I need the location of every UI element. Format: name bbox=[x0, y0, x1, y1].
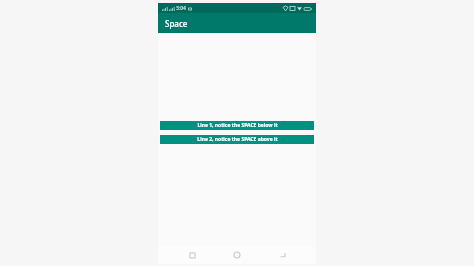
staticText: Line 2, notice the SPACE above it bbox=[197, 136, 278, 143]
button[interactable]: Line 1, notice the SPACE below it bbox=[160, 121, 314, 130]
staticText: Line 1, notice the SPACE below it bbox=[197, 122, 278, 129]
button[interactable]: Line 2, notice the SPACE above it bbox=[160, 135, 314, 144]
staticText: 3:04 bbox=[176, 5, 186, 12]
button[interactable]: Home bbox=[226, 246, 248, 264]
button[interactable]: Recents bbox=[181, 246, 203, 264]
button[interactable]: Back bbox=[271, 246, 293, 264]
staticText: Space bbox=[165, 18, 188, 29]
